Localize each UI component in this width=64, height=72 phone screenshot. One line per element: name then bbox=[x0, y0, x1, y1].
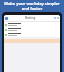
button[interactable]: Menu bbox=[4, 15, 60, 21]
button[interactable] bbox=[4, 27, 60, 32]
staticText: Meeting bbox=[25, 16, 36, 20]
button[interactable] bbox=[4, 22, 60, 27]
button[interactable]: Menu bbox=[5, 17, 8, 20]
staticText: Make your workday simpler and faster bbox=[3, 1, 61, 11]
button[interactable] bbox=[4, 32, 60, 37]
